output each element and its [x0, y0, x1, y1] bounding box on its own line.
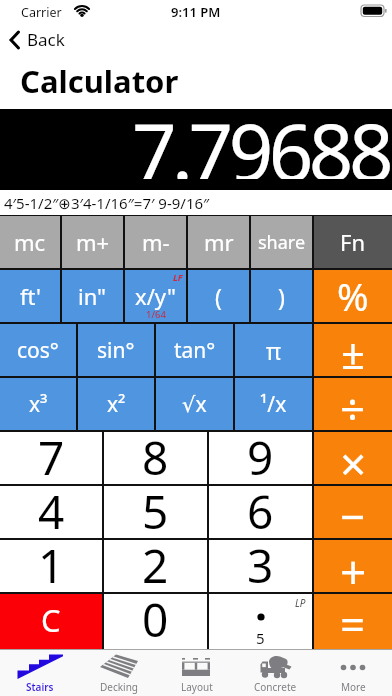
staticText: 9:11 PM — [171, 3, 221, 21]
button[interactable]: cos° — [0, 324, 76, 376]
staticText: C — [41, 599, 61, 641]
staticText: 4′5-1/2″⊕3′4-1/16″=7′ 9-9/16″ — [4, 193, 210, 213]
staticText: 7 — [38, 426, 65, 478]
staticText: share — [258, 230, 306, 255]
staticText: 5 — [256, 628, 265, 648]
button[interactable]: mr — [188, 216, 249, 268]
staticText: − — [340, 486, 366, 538]
staticText: × — [340, 432, 367, 484]
button[interactable]: √x — [156, 378, 233, 430]
staticText: ÷ — [340, 378, 366, 430]
button[interactable]: 0 — [104, 594, 207, 649]
button[interactable]: m- — [125, 216, 186, 268]
button[interactable]: LP — [209, 594, 312, 649]
button[interactable]: 2 — [104, 540, 207, 592]
button[interactable]: in" — [62, 270, 123, 322]
staticText: ft' — [20, 281, 41, 311]
staticText: cos° — [17, 336, 59, 365]
button[interactable]: + — [314, 540, 392, 592]
staticText: Calculator — [20, 60, 179, 102]
staticText: 9 — [247, 426, 274, 478]
staticText: sin° — [97, 336, 135, 365]
staticText: More — [341, 680, 366, 694]
button[interactable]: 1 — [0, 540, 102, 592]
staticText: LF — [173, 271, 183, 283]
button[interactable]: m+ — [62, 216, 123, 268]
button[interactable]: π — [235, 324, 312, 376]
staticText: LP — [295, 596, 306, 610]
staticText: % — [337, 270, 369, 322]
button[interactable]: ( — [188, 270, 249, 322]
button[interactable]: Concrete — [236, 650, 314, 696]
button[interactable]: x/y" — [125, 270, 186, 322]
button[interactable]: Fn — [314, 216, 392, 268]
staticText: + — [340, 540, 367, 592]
staticText: √x — [182, 390, 207, 419]
button[interactable]: Stairs — [0, 650, 79, 696]
staticText: 4 — [38, 480, 65, 532]
staticText: ( — [215, 281, 222, 312]
staticText: Carrier — [21, 4, 62, 21]
button[interactable]: x² — [78, 378, 154, 430]
staticText: x² — [107, 390, 126, 419]
staticText: Stairs — [26, 680, 54, 694]
staticText: Layout — [181, 680, 213, 694]
staticText: mr — [204, 227, 234, 257]
button[interactable]: 5 — [104, 486, 207, 538]
button[interactable]: Back — [8, 28, 65, 51]
staticText: 5 — [142, 480, 169, 532]
staticText: x³ — [29, 390, 48, 419]
button[interactable]: C — [0, 594, 102, 649]
staticText: in" — [78, 281, 107, 311]
button[interactable]: tan° — [156, 324, 233, 376]
button[interactable]: ) — [251, 270, 312, 322]
staticText: Back — [27, 28, 65, 51]
button[interactable]: x³ — [0, 378, 76, 430]
staticText: 7.79688 — [132, 98, 390, 179]
staticText: mc — [14, 227, 46, 257]
staticText: 6 — [247, 480, 274, 532]
staticText: 1/64 — [146, 308, 166, 321]
button[interactable]: Decking — [79, 650, 158, 696]
button[interactable]: 4 — [0, 486, 102, 538]
button[interactable]: Layout — [158, 650, 236, 696]
button[interactable]: More — [314, 650, 392, 696]
staticText: Fn — [340, 227, 366, 257]
staticText: x/y" — [135, 281, 176, 311]
staticText: π — [266, 335, 282, 366]
staticText: m- — [142, 227, 170, 257]
button[interactable]: 7 — [0, 432, 102, 484]
staticText: Decking — [100, 680, 138, 694]
button[interactable]: = — [314, 594, 392, 649]
button[interactable]: mc — [0, 216, 60, 268]
button[interactable]: sin° — [78, 324, 154, 376]
button[interactable]: 6 — [209, 486, 312, 538]
button[interactable]: 9 — [209, 432, 312, 484]
button[interactable]: 8 — [104, 432, 207, 484]
button[interactable]: × — [314, 432, 392, 484]
staticText: m+ — [76, 227, 110, 257]
staticText: ± — [341, 324, 366, 376]
staticText: 1 — [38, 534, 65, 586]
button[interactable]: share — [251, 216, 312, 268]
button[interactable]: ± — [314, 324, 392, 376]
staticText: ¹/x — [260, 390, 287, 419]
staticText: ) — [278, 281, 285, 312]
staticText: tan° — [174, 336, 216, 365]
staticText: = — [340, 594, 366, 649]
button[interactable]: ÷ — [314, 378, 392, 430]
button[interactable]: ft' — [0, 270, 60, 322]
staticText: Concrete — [254, 680, 297, 694]
button[interactable]: ¹/x — [235, 378, 312, 430]
button[interactable]: − — [314, 486, 392, 538]
staticText: 2 — [142, 534, 169, 586]
staticText: 8 — [142, 426, 169, 478]
button[interactable]: 3 — [209, 540, 312, 592]
staticText: 0 — [142, 588, 169, 643]
button[interactable]: % — [314, 270, 392, 322]
staticText: 3 — [247, 534, 274, 586]
